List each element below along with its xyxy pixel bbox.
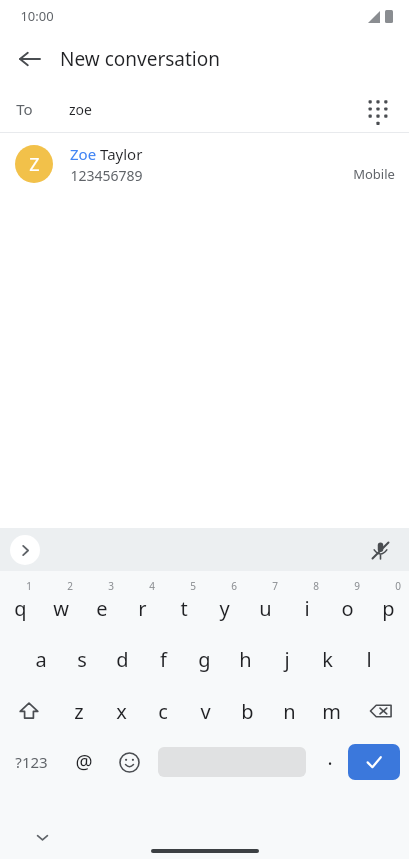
staticText: w bbox=[53, 595, 69, 622]
button[interactable]: h bbox=[225, 637, 266, 681]
button[interactable]: Expand suggestions bbox=[10, 535, 40, 565]
staticText: 123456789 bbox=[70, 166, 143, 185]
staticText: Zoe Taylor bbox=[70, 144, 143, 164]
button[interactable]: s bbox=[61, 637, 102, 681]
staticText: 2 bbox=[67, 579, 73, 593]
staticText: f bbox=[160, 646, 167, 673]
staticText: Z bbox=[29, 152, 40, 177]
staticText: 1 bbox=[26, 579, 32, 593]
staticText: 10:00 bbox=[20, 7, 54, 25]
staticText: l bbox=[366, 646, 372, 673]
staticText: 0 bbox=[395, 579, 401, 593]
button[interactable]: Hide keyboard bbox=[28, 823, 56, 851]
staticText: u bbox=[259, 595, 272, 622]
button[interactable]: . bbox=[312, 741, 348, 783]
button[interactable]: x bbox=[100, 689, 142, 733]
staticText: k bbox=[322, 646, 333, 673]
staticText: zoe bbox=[69, 100, 92, 119]
button[interactable]: e bbox=[81, 577, 122, 629]
button[interactable]: f bbox=[143, 637, 184, 681]
button[interactable]: o bbox=[327, 577, 368, 629]
staticText: 7 bbox=[272, 579, 278, 593]
staticText: p bbox=[382, 595, 395, 622]
staticText: n bbox=[283, 698, 296, 725]
button[interactable]: g bbox=[184, 637, 225, 681]
button[interactable]: u bbox=[245, 577, 286, 629]
button[interactable]: r bbox=[122, 577, 163, 629]
button[interactable]: z bbox=[58, 689, 100, 733]
button[interactable]: d bbox=[102, 637, 143, 681]
button[interactable]: p bbox=[368, 577, 409, 629]
staticText: To bbox=[16, 99, 33, 119]
button[interactable]: q bbox=[0, 577, 40, 629]
button[interactable]: a bbox=[20, 637, 61, 681]
button[interactable]: j bbox=[266, 637, 307, 681]
button[interactable]: y bbox=[204, 577, 245, 629]
button[interactable]: k bbox=[307, 637, 348, 681]
button[interactable]: Shift bbox=[0, 689, 58, 733]
staticText: New conversation bbox=[60, 46, 220, 72]
staticText: h bbox=[239, 646, 252, 673]
button[interactable]: Emoji bbox=[106, 741, 152, 783]
button[interactable]: v bbox=[184, 689, 226, 733]
button[interactable]: ?123 bbox=[0, 741, 62, 783]
button[interactable]: m bbox=[310, 689, 352, 733]
staticText: 9 bbox=[354, 579, 360, 593]
staticText: @ bbox=[75, 749, 93, 775]
button[interactable]: n bbox=[268, 689, 310, 733]
button[interactable]: t bbox=[163, 577, 204, 629]
button[interactable]: Backspace bbox=[352, 689, 409, 733]
staticText: d bbox=[116, 646, 129, 673]
button[interactable]: Z bbox=[0, 133, 409, 195]
button[interactable]: b bbox=[226, 689, 268, 733]
button[interactable]: c bbox=[142, 689, 184, 733]
staticText: 3 bbox=[108, 579, 114, 593]
staticText: o bbox=[341, 595, 354, 622]
staticText: t bbox=[180, 595, 188, 622]
staticText: s bbox=[77, 646, 87, 673]
button[interactable]: i bbox=[286, 577, 327, 629]
staticText: 5 bbox=[190, 579, 196, 593]
staticText: b bbox=[241, 698, 254, 725]
staticText: z bbox=[74, 698, 84, 725]
staticText: m bbox=[322, 698, 341, 725]
staticText: 6 bbox=[231, 579, 237, 593]
button[interactable]: w bbox=[40, 577, 81, 629]
staticText: j bbox=[284, 646, 290, 673]
staticText: 4 bbox=[149, 579, 155, 593]
staticText: . bbox=[327, 745, 333, 771]
button[interactable]: Send bbox=[348, 744, 400, 780]
staticText: v bbox=[200, 698, 211, 725]
staticText: x bbox=[116, 698, 127, 725]
staticText: Mobile bbox=[353, 165, 395, 183]
staticText: q bbox=[14, 595, 27, 622]
staticText: a bbox=[35, 646, 47, 673]
button[interactable]: Voice input off bbox=[365, 535, 395, 565]
button[interactable]: @ bbox=[62, 741, 106, 783]
button[interactable]: l bbox=[348, 637, 389, 681]
staticText: r bbox=[138, 595, 147, 622]
staticText: ?123 bbox=[15, 752, 48, 772]
staticText: y bbox=[219, 595, 230, 622]
staticText: 8 bbox=[313, 579, 319, 593]
staticText: c bbox=[158, 698, 168, 725]
staticText: g bbox=[198, 646, 211, 673]
button[interactable]: Dialpad bbox=[357, 88, 399, 130]
button[interactable]: Back bbox=[8, 37, 52, 81]
staticText: i bbox=[304, 595, 310, 622]
staticText: e bbox=[96, 595, 108, 622]
